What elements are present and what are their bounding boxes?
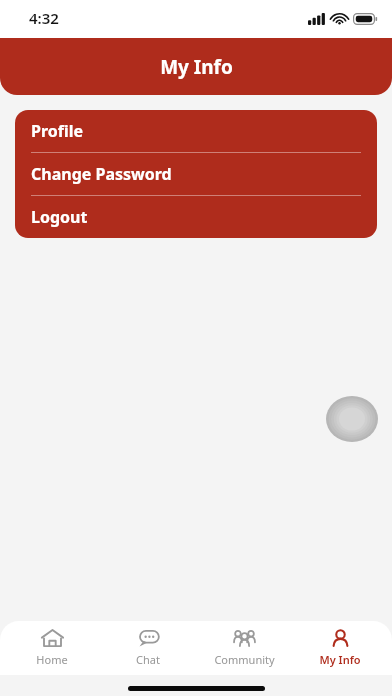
button[interactable]: Home [8,621,96,675]
button[interactable]: My Info [296,621,384,675]
button[interactable]: Profile [15,110,377,152]
button[interactable]: Community [200,621,288,675]
staticText: Home [36,652,68,667]
button[interactable]: Logout [15,196,377,238]
staticText: My Info [160,54,233,80]
staticText: Chat [136,652,160,667]
button[interactable]: Change Password [15,153,377,195]
staticText: Community [214,652,275,667]
staticText: Logout [31,206,88,228]
staticText: Profile [31,120,84,142]
staticText: My Info [319,652,361,667]
staticText: 4:32 [29,8,59,28]
button[interactable]: Chat [104,621,192,675]
staticText: Change Password [31,163,172,185]
